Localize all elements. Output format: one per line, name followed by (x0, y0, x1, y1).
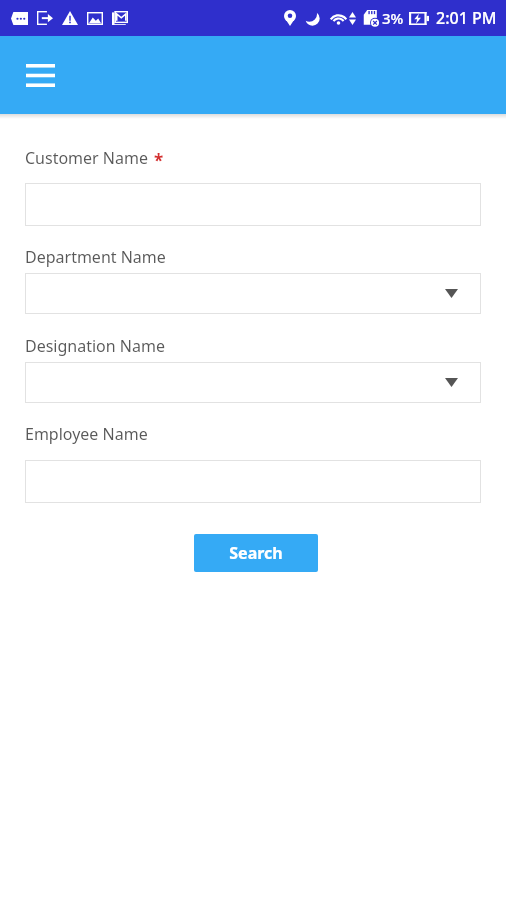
staticText: Department Name (25, 246, 166, 268)
staticText: Search (229, 542, 283, 564)
staticText: Customer Name (25, 147, 148, 169)
button[interactable] (25, 183, 481, 226)
staticText: * (154, 149, 164, 172)
staticText: 3% (382, 8, 404, 28)
button[interactable] (25, 460, 481, 503)
staticText: Employee Name (25, 423, 148, 445)
staticText: Designation Name (25, 335, 165, 357)
button[interactable]: Department Name dropdown (25, 273, 481, 314)
button[interactable]: Search (194, 534, 318, 572)
button[interactable]: Designation Name dropdown (25, 362, 481, 403)
button[interactable]: Open navigation menu (14, 49, 66, 101)
staticText: 2:01 PM (436, 7, 497, 29)
